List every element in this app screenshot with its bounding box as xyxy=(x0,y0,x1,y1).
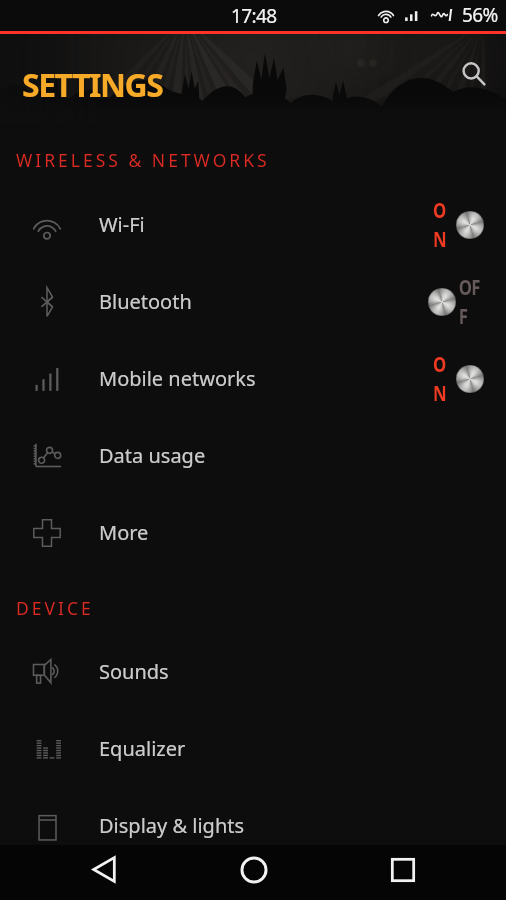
button[interactable]: Home xyxy=(214,845,294,894)
staticText: Data usage xyxy=(99,442,206,469)
staticText: Bluetooth xyxy=(99,288,192,315)
button[interactable]: Recents xyxy=(363,845,443,894)
staticText: DEVICE xyxy=(16,596,94,620)
staticText: WIRELESS & NETWORKS xyxy=(16,148,270,172)
staticText: Equalizer xyxy=(99,735,186,762)
button[interactable]: Equalizer xyxy=(0,710,506,787)
button[interactable]: Search xyxy=(450,50,498,98)
staticText: Mobile networks xyxy=(99,365,256,392)
button[interactable]: Bluetooth xyxy=(0,263,506,340)
staticText: SETTINGS xyxy=(22,63,163,107)
staticText: Display & lights xyxy=(99,812,245,839)
button[interactable]: Wi-Fi xyxy=(0,186,506,263)
button[interactable]: Sounds xyxy=(0,633,506,710)
staticText: 56% xyxy=(462,2,498,28)
staticText: 17:48 xyxy=(231,3,277,29)
staticText: Sounds xyxy=(99,658,169,685)
staticText: More xyxy=(99,519,149,546)
button[interactable]: Back xyxy=(64,845,144,894)
button[interactable]: More xyxy=(0,494,506,571)
staticText: Wi-Fi xyxy=(99,211,145,238)
staticText: ON xyxy=(433,196,450,254)
button[interactable]: Data usage xyxy=(0,417,506,494)
button[interactable]: Mobile networks xyxy=(0,340,506,417)
staticText: OFF xyxy=(459,273,481,331)
staticText: ON xyxy=(433,350,450,408)
button[interactable]: Display & lights xyxy=(0,787,506,864)
